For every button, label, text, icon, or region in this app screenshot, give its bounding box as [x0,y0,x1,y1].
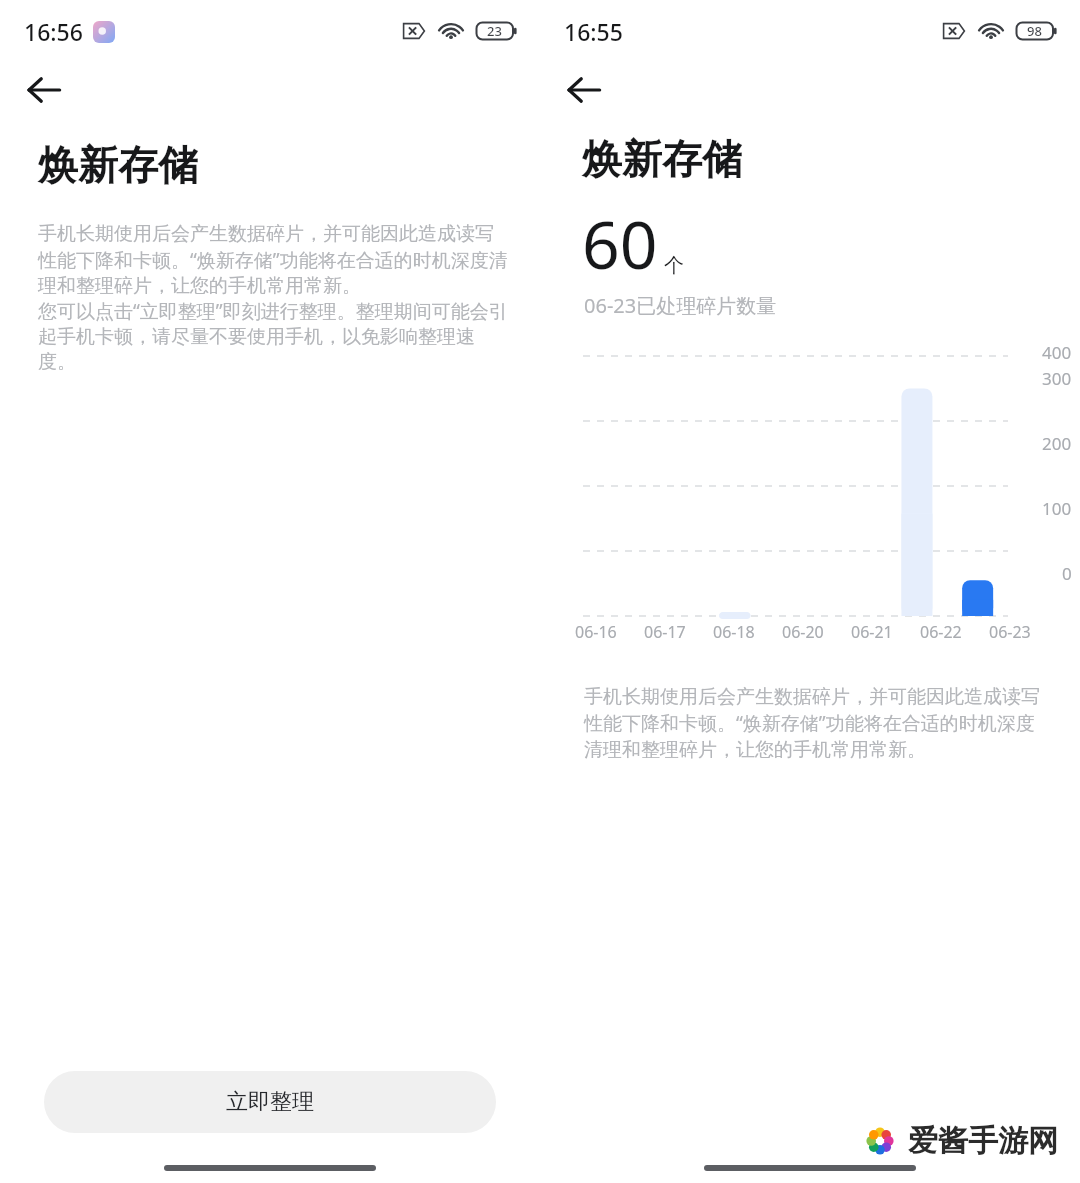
staticText: 06-17 [644,621,686,641]
staticText: 手机长期使用后会产生数据碎片，并可能因此造成读写性能下降和卡顿。“焕新存储”功能… [38,222,512,373]
staticText: 手机长期使用后会产生数据碎片，并可能因此造成读写性能下降和卡顿。“焕新存储”功能… [584,685,1048,762]
staticText: 06-20 [782,621,824,641]
staticText: 300 [1042,367,1072,390]
staticText: 60 [582,198,658,288]
staticText: 焕新存储 [582,134,742,184]
staticText: 06-16 [575,621,617,641]
staticText: 16:56 [24,16,83,47]
staticText: 0 [1062,562,1072,585]
staticText: 06-22 [920,621,962,641]
staticText: 06-21 [851,621,893,641]
staticText: 98 [1027,22,1042,40]
staticText: 06-23 [989,621,1031,641]
staticText: 16:55 [564,16,623,47]
staticText: 06-18 [713,621,755,641]
button[interactable]: 立即整理 [44,1071,496,1133]
staticText: 100 [1042,497,1072,520]
staticText: 06-23已处理碎片数量 [584,292,777,319]
button[interactable]: Back [556,62,612,118]
staticText: 爱酱手游网 [908,1122,1058,1160]
staticText: 23 [487,22,502,40]
staticText: 焕新存储 [38,140,198,190]
staticText: 400 [1042,341,1072,364]
button[interactable]: Back [16,62,72,118]
staticText: 200 [1042,432,1072,455]
staticText: 立即整理 [226,1088,314,1116]
staticText: 个 [664,253,684,278]
